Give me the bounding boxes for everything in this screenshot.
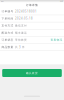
- staticText: ▪▪▮: [60, 0, 63, 2]
- staticText: 微信支付: [15, 24, 27, 27]
- staticText: 等待收货: [15, 38, 27, 42]
- staticText: 共 3 件: [15, 45, 25, 49]
- staticText: 配送方式: [1, 31, 13, 34]
- staticText: 订单详情: [26, 3, 38, 7]
- staticText: 顺丰速运: [15, 31, 27, 34]
- staticText: 2024-05-18: [15, 17, 33, 20]
- button[interactable]: 查看物流: [50, 38, 62, 42]
- staticText: 商品数量: [1, 45, 13, 49]
- staticText: 订单编号: [1, 10, 13, 13]
- staticText: 订单状态: [1, 38, 13, 42]
- staticText: 9:41: [1, 0, 4, 2]
- staticText: 20240518001: [15, 10, 37, 13]
- staticText: 支付方式: [1, 24, 13, 27]
- button[interactable]: 确认收货: [2, 69, 62, 77]
- staticText: 查看物流: [50, 38, 62, 42]
- staticText: 下单时间: [1, 17, 13, 20]
- staticText: 确认收货: [26, 71, 38, 75]
